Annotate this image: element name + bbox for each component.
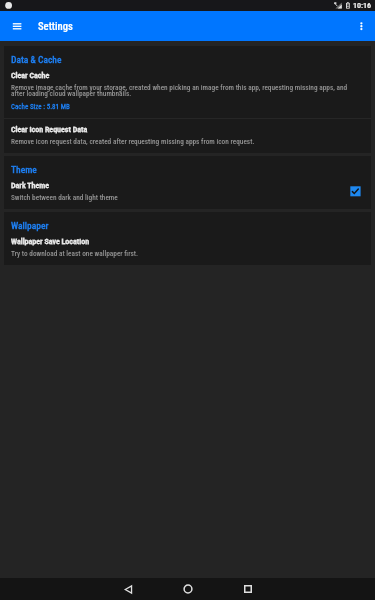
staticText: Theme [11, 164, 37, 175]
button[interactable]: Dark Theme [4, 175, 371, 209]
staticText: Remove icon request data, created after … [11, 137, 255, 146]
staticText: Wallpaper Save Location [11, 237, 90, 246]
button[interactable]: Clear Icon Request Data [4, 119, 371, 153]
staticText: Settings [38, 20, 73, 32]
staticText: 10:16 [353, 1, 372, 10]
button[interactable]: Clear Cache [4, 65, 371, 118]
button[interactable]: Back [105, 578, 151, 600]
staticText: Switch between dark and light theme [11, 193, 118, 202]
button[interactable]: Recent apps [225, 578, 271, 600]
button[interactable]: Open navigation drawer [3, 11, 33, 41]
button[interactable]: Home [165, 578, 211, 600]
staticText: Try to download at least one wallpaper f… [11, 249, 139, 258]
staticText: Remove image cache from your storage, cr… [11, 83, 361, 98]
staticText: Cache Size : 5.81 MB [11, 103, 70, 111]
button[interactable]: Dark theme enabled [350, 186, 361, 197]
staticText: Dark Theme [11, 181, 49, 190]
staticText: Clear Cache [11, 71, 50, 80]
button[interactable]: More options [345, 11, 375, 41]
staticText: Wallpaper [11, 220, 49, 231]
staticText: Clear Icon Request Data [11, 125, 88, 134]
staticText: Data & Cache [11, 54, 62, 65]
button[interactable]: Wallpaper Save Location [4, 231, 371, 265]
